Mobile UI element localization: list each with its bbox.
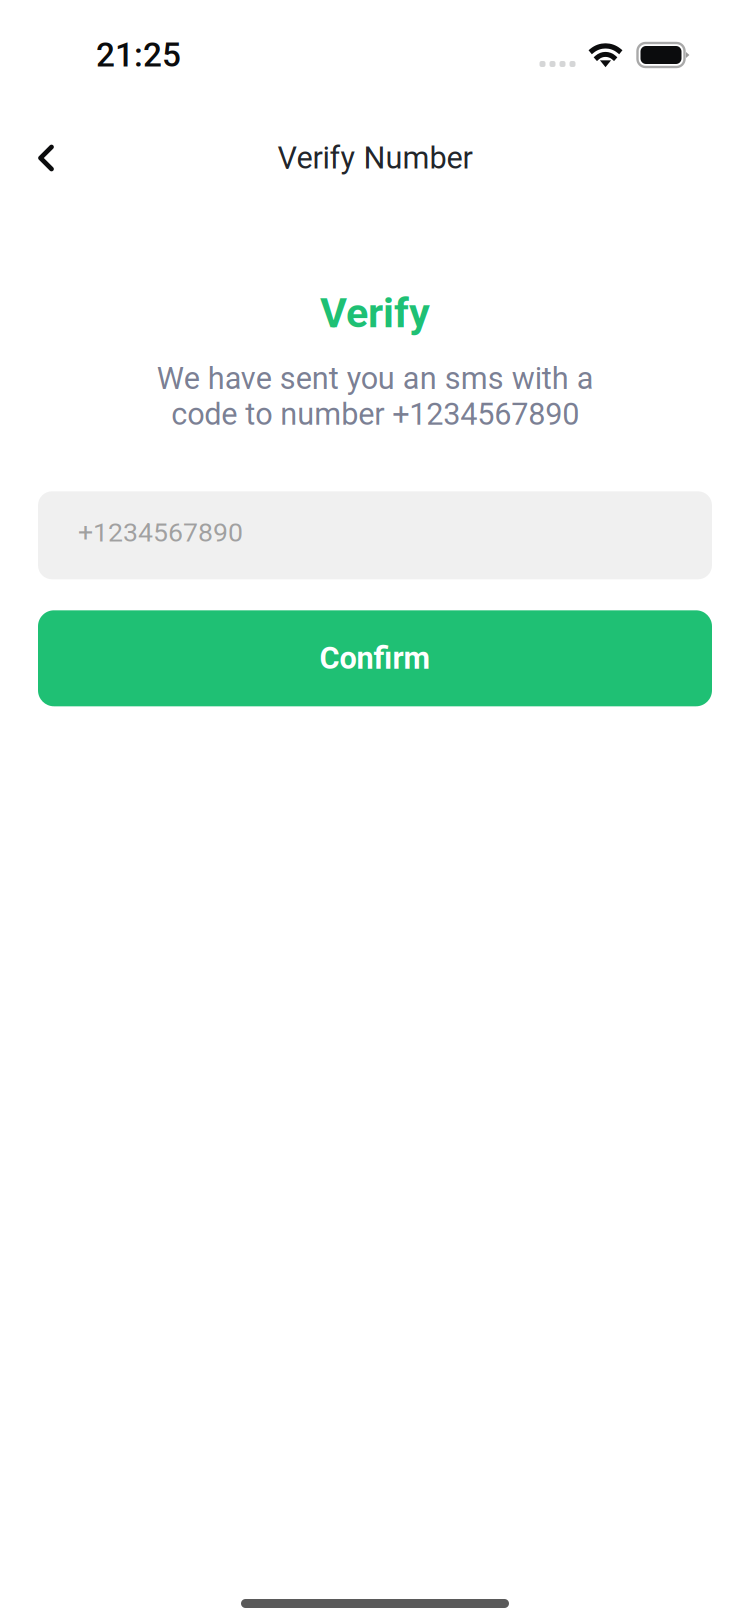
staticText: Verify Number xyxy=(277,140,472,176)
button[interactable]: +1234567890 xyxy=(38,491,712,579)
button[interactable]: Back xyxy=(0,122,82,193)
staticText: We have sent you an sms with a code to n… xyxy=(156,360,593,432)
button[interactable]: Confirm xyxy=(38,610,712,706)
staticText: Confirm xyxy=(319,640,430,676)
staticText: +1234567890 xyxy=(78,517,243,548)
staticText: Verify xyxy=(320,289,430,337)
staticText: 21:25 xyxy=(96,35,181,75)
